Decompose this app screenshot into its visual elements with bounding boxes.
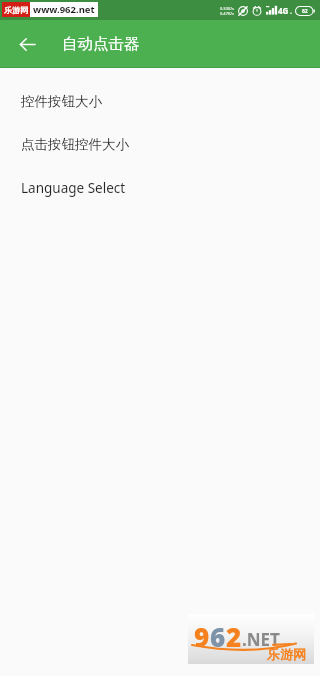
staticText: 0.33K/s bbox=[220, 6, 234, 11]
button[interactable]: 点击按钮控件大小 bbox=[0, 123, 320, 166]
staticText: 9 bbox=[194, 619, 210, 654]
staticText: 自动点击器 bbox=[62, 34, 140, 54]
staticText: 乐游网 bbox=[4, 5, 28, 15]
staticText: 2 bbox=[226, 619, 242, 654]
staticText: 控件按钮大小 bbox=[21, 93, 102, 110]
button[interactable]: 控件按钮大小 bbox=[0, 80, 320, 123]
staticText: ₊ bbox=[290, 7, 293, 15]
staticText: 0.47K/s bbox=[220, 11, 234, 16]
staticText: .NET bbox=[242, 628, 280, 651]
staticText: 6 bbox=[210, 619, 226, 654]
staticText: 4G bbox=[278, 5, 289, 16]
staticText: 62 bbox=[302, 8, 308, 15]
button[interactable]: Back bbox=[9, 26, 45, 62]
button[interactable]: Language Select bbox=[0, 166, 320, 209]
staticText: 点击按钮控件大小 bbox=[21, 136, 129, 153]
staticText: 乐游网 bbox=[267, 646, 306, 662]
staticText: www.962.net bbox=[33, 3, 95, 16]
staticText: Language Select bbox=[21, 179, 126, 197]
